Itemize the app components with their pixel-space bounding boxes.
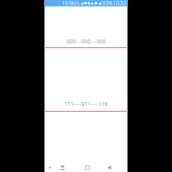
button[interactable]: Back	[104, 162, 116, 172]
staticText: 18.9K/s	[62, 0, 80, 7]
button[interactable]: Hide keyboard	[57, 162, 68, 172]
staticText: 000---000---000	[66, 38, 105, 45]
button[interactable]: Input method	[45, 162, 54, 172]
staticText: 10:32	[113, 0, 126, 7]
staticText: 111----911----119	[64, 100, 107, 108]
staticText: 93%	[102, 0, 112, 7]
button[interactable]: Recents	[81, 162, 93, 172]
